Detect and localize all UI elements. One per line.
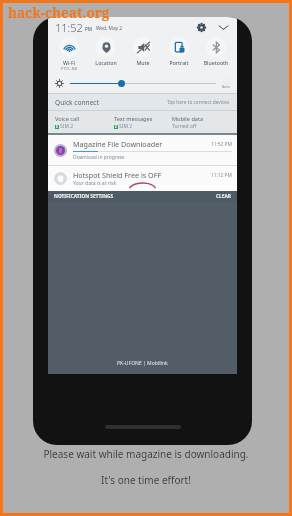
button[interactable]: Auto — [222, 78, 230, 89]
staticText: SIM 2 — [119, 123, 133, 130]
button[interactable]: Collapse — [216, 20, 230, 34]
staticText: SIM 2 — [60, 123, 74, 130]
staticText: Text messages — [114, 115, 153, 123]
button[interactable]: Settings — [194, 20, 208, 34]
staticText: Auto — [222, 84, 230, 89]
staticText: hack-cheat.org — [8, 4, 110, 22]
staticText: 11:12 PM — [211, 172, 232, 179]
button[interactable]: Voice call — [55, 115, 114, 130]
button[interactable]: Brightness — [70, 78, 216, 88]
button[interactable]: Wi-Fi — [52, 37, 86, 72]
staticText: Download in progress — [73, 154, 125, 161]
staticText: PTCL-BB — [52, 66, 86, 72]
staticText: Bluetooth — [199, 59, 233, 66]
staticText: Wi-Fi — [52, 59, 86, 66]
button[interactable]: Hotspot Shield Free is OFF — [53, 170, 232, 187]
staticText: Please wait while magazine is downloadin… — [3, 447, 289, 461]
button[interactable]: NOTIFICATION SETTINGS — [54, 193, 114, 200]
staticText: PM — [85, 26, 93, 32]
staticText: Quick connect — [55, 98, 99, 107]
staticText: Mute — [126, 59, 160, 66]
button[interactable]: Mobile data — [172, 115, 230, 130]
staticText: Voice call — [55, 115, 80, 123]
staticText: 11:52 — [55, 20, 83, 35]
staticText: Turned off — [172, 123, 197, 130]
button[interactable]: CLEAR — [216, 193, 231, 200]
button[interactable]: Text messages — [114, 115, 172, 130]
staticText: 11:52 PM — [211, 141, 232, 148]
staticText: It's one time effort! — [3, 473, 289, 487]
button[interactable]: Portrait — [162, 37, 196, 66]
staticText: Location — [89, 59, 123, 66]
staticText: Tap here to connect devices — [167, 99, 230, 106]
button[interactable]: Magazine File Downloader — [53, 139, 232, 161]
staticText: Mobile data — [172, 115, 204, 123]
staticText: Your data is at risk — [73, 180, 117, 187]
button[interactable]: Quick connect — [55, 94, 230, 110]
staticText: 2 — [56, 125, 58, 129]
staticText: 2 — [115, 125, 117, 129]
button[interactable]: Bluetooth — [199, 37, 233, 66]
button[interactable]: Mute — [126, 37, 160, 66]
staticText: Magazine File Downloader — [73, 139, 211, 149]
staticText: Portrait — [162, 59, 196, 66]
staticText: PK-UFONE | Mobilink — [117, 360, 168, 367]
staticText: Hotspot Shield Free is OFF — [73, 170, 211, 180]
staticText: Wed, May 2 — [96, 25, 123, 32]
button[interactable]: Location — [89, 37, 123, 66]
